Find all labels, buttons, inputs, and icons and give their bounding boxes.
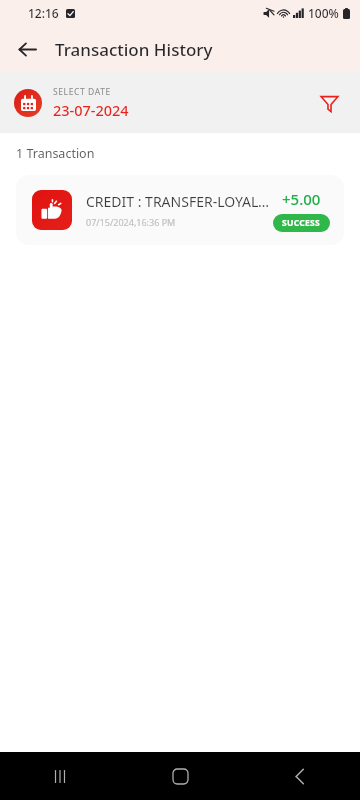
button[interactable]: Back: [10, 32, 44, 66]
staticText: +5.00: [282, 189, 321, 209]
staticText: 23-07-2024: [53, 100, 129, 120]
staticText: SELECT DATE: [53, 86, 111, 98]
staticText: 12:16: [28, 5, 59, 21]
staticText: Transaction History: [55, 38, 213, 61]
button[interactable]: SUCCESS: [273, 214, 330, 232]
button[interactable]: Home: [120, 752, 240, 800]
button[interactable]: SELECT DATE: [0, 86, 312, 120]
staticText: 1 Transaction: [16, 145, 95, 162]
staticText: CREDIT : TRANSFER-LOYALTY: [86, 192, 273, 211]
button[interactable]: Recent apps: [0, 752, 120, 800]
staticText: 100%: [308, 5, 339, 21]
staticText: SUCCESS: [282, 217, 321, 229]
button[interactable]: Back: [240, 752, 360, 800]
staticText: 07/15/2024,16:36 PM: [86, 216, 176, 228]
button[interactable]: CREDIT : TRANSFER-LOYALTY: [16, 175, 344, 245]
button[interactable]: Filter: [312, 86, 346, 120]
